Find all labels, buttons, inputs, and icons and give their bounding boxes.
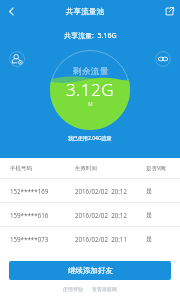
staticText: 是	[146, 235, 153, 243]
button[interactable]: 159*****616	[0, 203, 180, 226]
staticText: 手机号码	[10, 165, 75, 172]
button[interactable]: Share	[158, 0, 180, 22]
staticText: 152*****169	[10, 187, 75, 195]
staticText: 是	[146, 187, 153, 195]
staticText: 我已使用2.04G流量	[68, 135, 112, 142]
staticText: M	[88, 101, 93, 108]
staticText: 3.12G	[66, 78, 115, 101]
staticText: 剩余流量	[73, 66, 109, 77]
staticText: 继续添加好友	[68, 266, 113, 275]
button[interactable]: 159*****073	[0, 227, 180, 250]
staticText: 2016/02/02 20:12	[75, 211, 146, 219]
staticText: 159*****073	[10, 235, 75, 243]
staticText: 生效时间	[75, 165, 146, 172]
staticText: 是否V网	[146, 164, 166, 172]
button[interactable]: Manage members	[9, 51, 25, 67]
staticText: 159*****616	[10, 211, 75, 219]
button[interactable]: 使用帮助	[62, 285, 84, 293]
button[interactable]: 152*****169	[0, 179, 180, 202]
button[interactable]: 继续添加好友	[9, 261, 171, 280]
staticText: 2016/02/02 20:11	[75, 235, 146, 243]
staticText: 2016/02/02 20:12	[75, 187, 146, 195]
staticText: 查看家庭网	[92, 286, 117, 292]
staticText: 共享流量: 5.16G	[64, 31, 117, 41]
button[interactable]: Back	[0, 0, 22, 22]
staticText: 使用帮助	[63, 286, 83, 292]
staticText: 共享流量池	[22, 7, 148, 16]
button[interactable]: Share link	[155, 51, 171, 67]
button[interactable]: 查看家庭网	[91, 285, 118, 293]
staticText: 是	[146, 211, 153, 219]
